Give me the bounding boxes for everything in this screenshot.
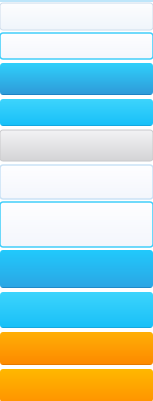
button[interactable]: Button 7 bbox=[0, 202, 153, 247]
button[interactable]: Button 3 bbox=[0, 63, 153, 95]
button[interactable]: Button 1 bbox=[0, 3, 153, 30]
button[interactable]: Button 10 bbox=[0, 332, 153, 365]
button[interactable]: Button 9 bbox=[0, 292, 153, 328]
button[interactable]: Button 4 bbox=[0, 99, 153, 126]
button[interactable]: Button 8 bbox=[0, 250, 153, 288]
button[interactable]: Button 11 bbox=[0, 369, 153, 401]
button[interactable]: Button 5 bbox=[0, 130, 153, 161]
button[interactable]: Button 6 bbox=[0, 165, 153, 199]
button[interactable]: Button 2 bbox=[0, 33, 153, 59]
